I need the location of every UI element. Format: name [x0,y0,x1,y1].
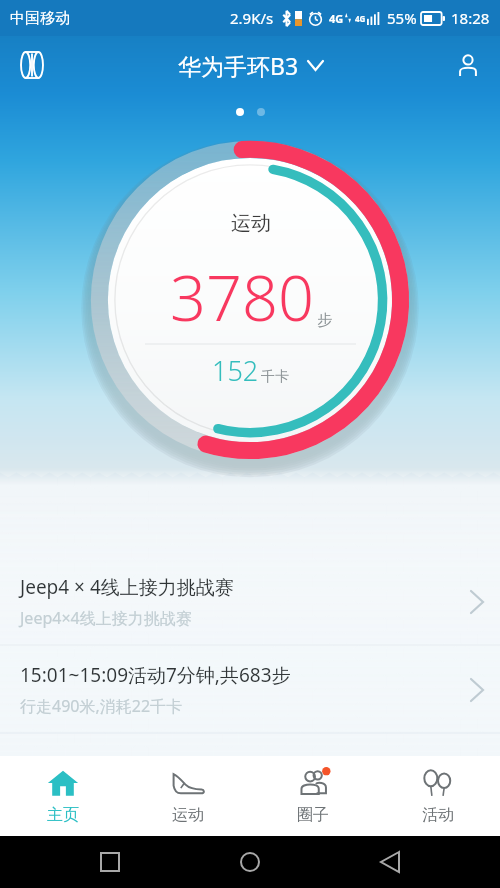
staticText: 3780 [170,254,314,340]
staticText: 运动 [172,805,204,825]
button[interactable]: Back [370,842,410,882]
staticText: 行走490米,消耗22千卡 [20,695,183,717]
staticText: 4G [329,11,344,26]
button[interactable]: Recents [90,842,130,882]
staticText: 15:01~15:09活动7分钟,共683步 [20,662,291,688]
button[interactable]: 圈子 [250,756,375,836]
button[interactable]: Jeep4 × 4线上接力挑战赛 [0,558,500,645]
button[interactable]: 运动 [125,756,250,836]
button[interactable]: Profile [444,41,492,89]
staticText: 运动 [231,211,271,236]
staticText: Jeep4 × 4线上接力挑战赛 [20,574,234,600]
staticText: 千卡 [261,368,289,386]
staticText: 步 [317,311,332,330]
staticText: 中国移动 [10,9,70,28]
button[interactable]: Device band [8,41,56,89]
staticText: 4G [355,13,366,24]
staticText: 152 [212,352,259,389]
staticText: Jeep4×4线上接力挑战赛 [20,607,192,629]
staticText: 18:28 [451,8,490,28]
staticText: 55% [387,8,417,28]
button[interactable]: Activity rings: 3780 steps [80,130,420,470]
button[interactable]: Home [230,842,270,882]
button[interactable]: 15:01~15:09活动7分钟,共683步 [0,646,500,733]
staticText: 华为手环B3 [178,50,299,81]
button[interactable]: 主页 [0,756,125,836]
staticText: 圈子 [297,805,329,825]
button[interactable]: 华为手环B3 [178,50,323,81]
staticText: 主页 [47,805,79,825]
staticText: 2.9K/s [230,8,274,28]
staticText: 活动 [422,805,454,825]
button[interactable]: 活动 [375,756,500,836]
